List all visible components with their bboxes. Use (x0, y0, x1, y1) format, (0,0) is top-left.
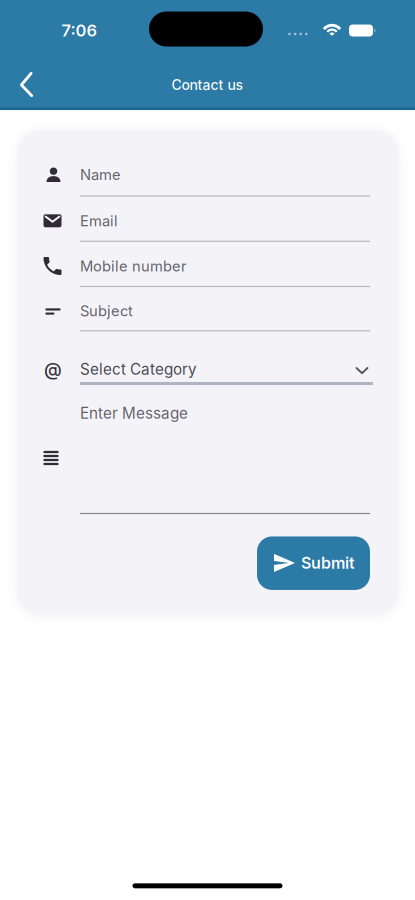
button[interactable]: Enter Message (80, 397, 370, 515)
button[interactable] (5, 63, 49, 107)
button[interactable]: Submit (257, 536, 370, 590)
staticText: Select Category (80, 360, 197, 378)
staticText: Contact us (171, 76, 243, 93)
button[interactable]: Select Category (76, 352, 377, 390)
button[interactable]: Email (80, 204, 370, 244)
staticText: Name (80, 166, 121, 184)
staticText: 7:06 (61, 21, 97, 41)
staticText: @ (44, 359, 62, 380)
staticText: Submit (301, 553, 355, 573)
staticText: Subject (80, 302, 133, 320)
button[interactable]: Name (80, 158, 370, 198)
staticText: Mobile number (80, 257, 187, 275)
staticText: Enter Message (80, 404, 188, 422)
button[interactable]: Subject (80, 294, 370, 334)
staticText: Email (80, 212, 118, 230)
button[interactable]: Mobile number (80, 249, 370, 289)
